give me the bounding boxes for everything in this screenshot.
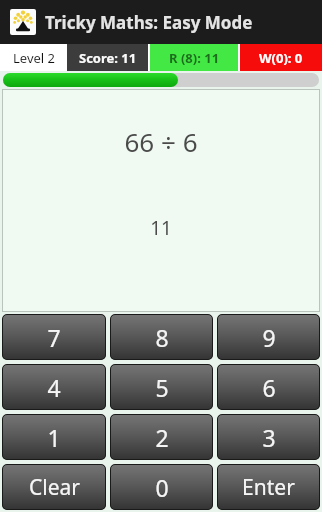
button[interactable]: 1 xyxy=(2,414,106,460)
staticText: 9 xyxy=(262,322,276,353)
button[interactable]: 7 xyxy=(2,314,106,360)
button[interactable]: Score: 11 xyxy=(67,44,148,71)
button[interactable]: 9 xyxy=(217,314,320,360)
staticText: 2 xyxy=(155,422,169,453)
button[interactable]: Clear xyxy=(2,464,106,510)
button[interactable]: 8 xyxy=(110,314,213,360)
staticText: 11 xyxy=(150,215,172,241)
button[interactable]: Enter xyxy=(217,464,320,510)
staticText: Enter xyxy=(242,473,295,502)
staticText: 7 xyxy=(47,322,61,353)
button[interactable]: R (8): 11 xyxy=(150,44,238,71)
button[interactable]: 5 xyxy=(110,364,213,410)
staticText: 5 xyxy=(155,372,169,403)
staticText: Tricky Maths: Easy Mode xyxy=(45,11,253,34)
staticText: W(0): 0 xyxy=(259,49,303,67)
staticText: 3 xyxy=(262,422,276,453)
staticText: 0 xyxy=(155,472,169,503)
button[interactable]: 6 xyxy=(217,364,320,410)
staticText: 8 xyxy=(155,322,169,353)
staticText: Level 2 xyxy=(13,49,55,67)
staticText: 4 xyxy=(47,372,61,403)
button[interactable]: 4 xyxy=(2,364,106,410)
staticText: 6 xyxy=(262,372,276,403)
staticText: 1 xyxy=(47,422,61,453)
staticText: Score: 11 xyxy=(79,49,137,67)
button[interactable]: Level 2 xyxy=(0,44,67,71)
button[interactable]: 3 xyxy=(217,414,320,460)
button[interactable]: 2 xyxy=(110,414,213,460)
staticText: R (8): 11 xyxy=(169,49,220,67)
button[interactable]: W(0): 0 xyxy=(240,44,322,71)
staticText: Clear xyxy=(29,473,80,502)
staticText: 66 ÷ 6 xyxy=(124,124,198,159)
button[interactable]: 0 xyxy=(110,464,213,510)
